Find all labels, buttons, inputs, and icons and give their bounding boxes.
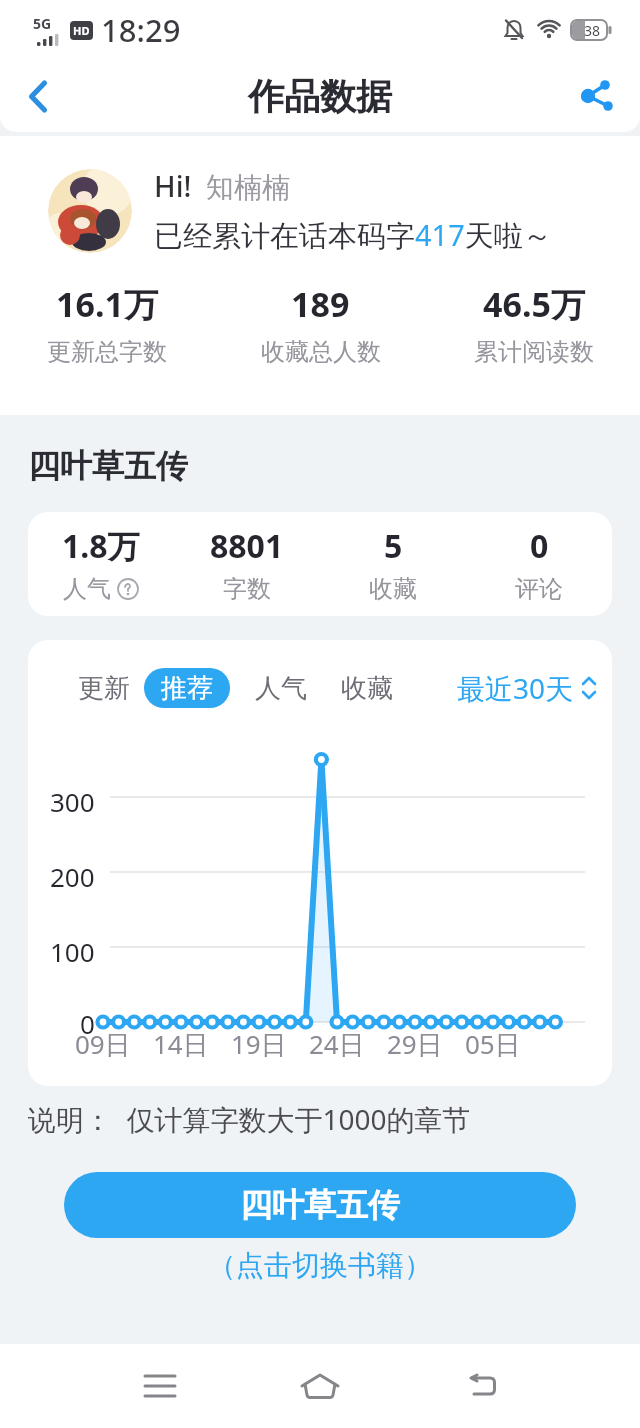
button[interactable] xyxy=(296,1362,344,1410)
staticText: 0 xyxy=(530,524,549,568)
staticText: 189 xyxy=(291,281,350,327)
staticText: 四叶草五传 xyxy=(240,1185,400,1225)
staticText: 5G xyxy=(33,14,52,33)
staticText: 14日 xyxy=(153,1026,209,1062)
staticText: 字数 xyxy=(223,574,271,604)
button[interactable]: 四叶草五传 xyxy=(64,1172,576,1238)
staticText: 5 xyxy=(384,524,403,568)
staticText: 四叶草五传 xyxy=(28,446,188,486)
staticText: 收藏总人数 xyxy=(261,337,381,367)
staticText: 09日 xyxy=(75,1026,131,1062)
staticText: 24日 xyxy=(309,1026,365,1062)
staticText: 最近30天 xyxy=(457,669,574,707)
button[interactable] xyxy=(456,1362,504,1410)
button[interactable]: （点击切换书籍） xyxy=(208,1248,432,1283)
staticText: 推荐 xyxy=(161,672,213,705)
staticText: 作品数据 xyxy=(248,74,392,119)
staticText: 累计阅读数 xyxy=(474,337,594,367)
staticText: 29日 xyxy=(387,1026,443,1062)
button[interactable] xyxy=(574,74,618,118)
staticText: 更新总字数 xyxy=(47,337,167,367)
staticText: 8801 xyxy=(210,524,284,568)
staticText: 评论 xyxy=(515,574,563,604)
button[interactable] xyxy=(136,1362,184,1410)
staticText: 1.8万 xyxy=(62,524,140,568)
staticText: 38 xyxy=(584,21,601,40)
staticText: 46.5万 xyxy=(483,281,585,327)
staticText: 收藏 xyxy=(369,574,417,604)
staticText: HD xyxy=(73,23,90,38)
staticText: 说明： 仅计算字数大于1000的章节 xyxy=(28,1100,471,1138)
staticText: 人气 xyxy=(63,574,111,604)
button[interactable] xyxy=(16,74,60,118)
staticText: 已经累计在话本码字417天啦～ xyxy=(154,215,552,255)
staticText: 19日 xyxy=(231,1026,287,1062)
staticText: 知楠楠 xyxy=(206,170,290,205)
staticText: 16.1万 xyxy=(56,281,158,327)
staticText: 100 xyxy=(50,934,95,969)
staticText: （点击切换书籍） xyxy=(208,1248,432,1283)
button[interactable]: 更新 xyxy=(78,672,130,705)
button[interactable]: 人气 xyxy=(255,672,307,705)
staticText: 200 xyxy=(50,859,95,894)
button[interactable]: 最近30天 xyxy=(457,669,598,707)
staticText: 05日 xyxy=(465,1026,521,1062)
button[interactable]: 收藏 xyxy=(341,672,393,705)
staticText: 300 xyxy=(50,784,95,819)
staticText: Hi! xyxy=(154,166,192,205)
button[interactable]: 推荐 xyxy=(144,668,230,708)
staticText: 18:29 xyxy=(101,9,181,51)
staticText: 0 xyxy=(80,1006,95,1041)
